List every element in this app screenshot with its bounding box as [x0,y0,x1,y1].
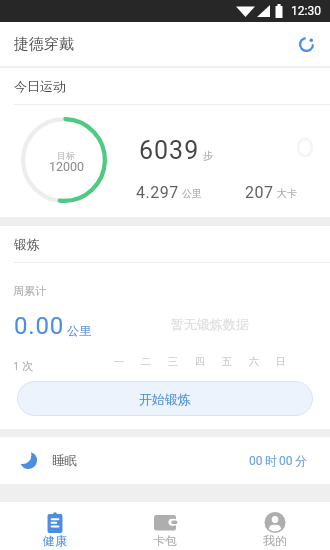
staticText: 公里 [67,323,91,338]
staticText: 00 [279,454,293,468]
staticText: 今日运动 [14,78,66,94]
staticText: 12000 [49,159,85,174]
staticText: 12:30 [291,4,321,18]
staticText: 1 次 [13,358,34,373]
button[interactable]: Refresh [289,27,323,61]
staticText: 捷德穿戴 [14,35,74,54]
button[interactable]: 睡眠 [0,437,330,484]
staticText: 分 [295,453,307,468]
staticText: 六 [249,355,259,368]
staticText: 睡眠 [52,453,77,469]
staticText: 207 [245,183,274,202]
button[interactable]: 健康 [0,502,110,550]
button[interactable]: 我的 [220,502,330,550]
staticText: 健康 [43,533,67,548]
staticText: 目标 [57,150,75,161]
staticText: 时 [265,453,277,468]
staticText: 开始锻炼 [139,391,191,407]
button[interactable]: 卡包 [110,502,220,550]
button[interactable]: 开始锻炼 [17,381,313,416]
staticText: 0.00 [14,312,64,340]
staticText: 6039 [139,136,200,165]
staticText: 卡包 [153,533,177,548]
staticText: 我的 [263,533,287,548]
staticText: 大卡 [277,187,297,200]
staticText: 周累计 [13,284,46,298]
staticText: 一 [114,355,124,368]
staticText: 4.297 [136,183,179,202]
staticText: 公里 [182,187,202,200]
staticText: 步 [203,149,213,162]
staticText: 三 [168,355,178,368]
staticText: 二 [141,355,151,368]
staticText: 四 [195,355,205,368]
staticText: 五 [222,355,232,368]
staticText: 00 [249,454,263,468]
staticText: 暂无锻炼数据 [171,316,249,332]
staticText: 日 [276,355,286,368]
staticText: 锻炼 [14,236,40,252]
